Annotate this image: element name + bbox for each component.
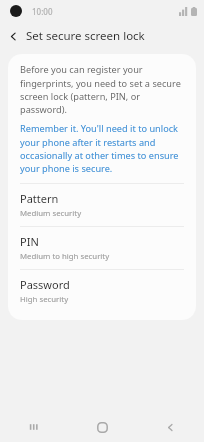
staticText: Medium security	[20, 208, 82, 219]
staticText: 10:00	[32, 6, 53, 17]
staticText: Remember it. You'll need it to unlock yo…	[20, 122, 184, 174]
staticText: Pattern	[20, 191, 59, 206]
button[interactable]: Pattern	[8, 184, 196, 226]
button[interactable]: Home	[68, 412, 136, 442]
button[interactable]: Password	[8, 270, 196, 312]
button[interactable]: PIN	[8, 227, 196, 269]
button[interactable]: Back	[136, 412, 204, 442]
staticText: PIN	[20, 234, 39, 249]
button[interactable]: Recent apps	[0, 412, 68, 442]
staticText: Set secure screen lock	[26, 28, 145, 44]
staticText: Password	[20, 277, 70, 292]
staticText: Before you can register your fingerprint…	[20, 63, 184, 115]
button[interactable]: Navigate up	[0, 23, 26, 49]
staticText: Medium to high security	[20, 251, 110, 262]
staticText: High security	[20, 294, 69, 305]
